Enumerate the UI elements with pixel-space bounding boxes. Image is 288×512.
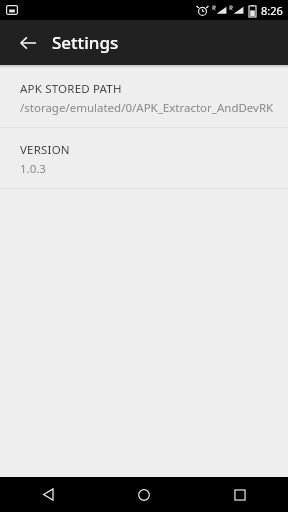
staticText: /storage/emulated/0/APK_Extractor_AndDev… (20, 100, 274, 116)
staticText: VERSION (20, 142, 70, 158)
staticText: 1.0.3 (20, 161, 46, 177)
staticText: 8:26 (261, 3, 283, 18)
button[interactable]: VERSION (0, 128, 288, 188)
button[interactable]: Back (0, 477, 96, 512)
staticText: Settings (52, 31, 119, 54)
button[interactable]: Home (96, 477, 192, 512)
button[interactable]: APK STORED PATH (0, 68, 288, 127)
staticText: APK STORED PATH (20, 81, 122, 97)
button[interactable]: Recent apps (192, 477, 288, 512)
button[interactable]: Navigate up (12, 27, 44, 59)
